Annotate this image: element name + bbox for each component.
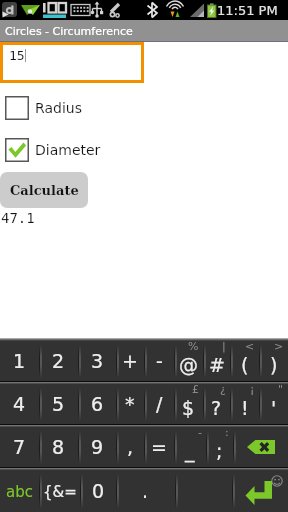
- staticText: 8: [52, 436, 65, 458]
- button[interactable]: Radius: [5, 96, 82, 120]
- button[interactable]: ": [259, 384, 288, 424]
- button[interactable]: 6: [78, 384, 116, 424]
- staticText: =: [151, 436, 167, 458]
- staticText: 6: [91, 393, 104, 415]
- button[interactable]: .: [116, 470, 175, 512]
- staticText: +: [122, 350, 138, 372]
- staticText: -: [156, 350, 163, 372]
- staticText: 0: [92, 480, 105, 502]
- button[interactable]: :: [206, 427, 233, 467]
- button[interactable]: 0: [80, 470, 116, 512]
- staticText: @: [179, 354, 198, 376]
- button[interactable]: -: [144, 341, 174, 381]
- staticText: /: [156, 393, 163, 415]
- staticText: -: [198, 426, 202, 439]
- button[interactable]: 15: [0, 42, 144, 83]
- staticText: Diameter: [35, 142, 101, 158]
- staticText: 9: [91, 436, 104, 458]
- button[interactable]: 1: [0, 341, 39, 381]
- staticText: <: [245, 340, 255, 353]
- button[interactable]: /: [144, 384, 174, 424]
- staticText: Calculate: [10, 183, 79, 198]
- button[interactable]: Calculate: [0, 172, 88, 208]
- staticText: 4: [13, 393, 26, 415]
- button[interactable]: 5: [39, 384, 78, 424]
- staticText: |: [222, 340, 226, 353]
- staticText: ;: [216, 440, 223, 462]
- staticText: ?: [211, 397, 222, 419]
- button[interactable]: 2: [39, 341, 78, 381]
- button[interactable]: {&=: [39, 470, 80, 512]
- staticText: 1: [13, 350, 26, 372]
- button[interactable]: *: [116, 384, 144, 424]
- staticText: Circles - Circumference: [5, 25, 133, 38]
- staticText: :: [225, 426, 229, 439]
- staticText: .: [142, 480, 149, 502]
- staticText: ¿: [220, 383, 226, 396]
- staticText: 7: [13, 436, 26, 458]
- staticText: (: [241, 354, 249, 376]
- staticText: 2: [52, 350, 65, 372]
- staticText: 3: [91, 350, 104, 372]
- button[interactable]: <: [230, 341, 259, 381]
- button[interactable]: abc: [0, 470, 39, 512]
- button[interactable]: >: [259, 341, 288, 381]
- button[interactable]: ¡: [230, 384, 259, 424]
- staticText: ): [270, 354, 278, 376]
- staticText: $: [182, 397, 195, 419]
- staticText: 47.1: [1, 210, 35, 226]
- button[interactable]: Backspace: [233, 427, 288, 467]
- button[interactable]: 4: [0, 384, 39, 424]
- staticText: {&=: [43, 483, 77, 500]
- button[interactable]: 9: [78, 427, 116, 467]
- staticText: 15: [9, 48, 25, 63]
- other: Backspace: [247, 440, 275, 454]
- button[interactable]: +: [116, 341, 144, 381]
- other: Enter: [232, 470, 288, 512]
- staticText: abc: [6, 483, 33, 500]
- staticText: ": [278, 383, 284, 396]
- staticText: ¡: [250, 383, 255, 396]
- staticText: 5: [52, 393, 65, 415]
- button[interactable]: Diameter: [5, 138, 101, 162]
- button[interactable]: Enter: [232, 470, 288, 512]
- staticText: ': [271, 397, 277, 419]
- staticText: ,: [127, 436, 134, 458]
- button[interactable]: |: [203, 341, 230, 381]
- button[interactable]: ¿: [203, 384, 230, 424]
- staticText: 11:51 PM: [217, 3, 278, 18]
- button[interactable]: 7: [0, 427, 39, 467]
- staticText: #: [209, 354, 225, 376]
- button[interactable]: %: [174, 341, 203, 381]
- button[interactable]: [175, 470, 232, 512]
- staticText: £: [192, 383, 199, 396]
- staticText: !: [241, 397, 249, 419]
- button[interactable]: -: [174, 427, 206, 467]
- button[interactable]: £: [174, 384, 203, 424]
- staticText: *: [125, 393, 135, 415]
- button[interactable]: ,: [116, 427, 144, 467]
- button[interactable]: 3: [78, 341, 116, 381]
- staticText: Radius: [35, 100, 82, 116]
- staticText: %: [188, 340, 199, 353]
- button[interactable]: =: [144, 427, 174, 467]
- button[interactable]: 8: [39, 427, 78, 467]
- staticText: _: [185, 440, 195, 462]
- staticText: >: [274, 340, 284, 353]
